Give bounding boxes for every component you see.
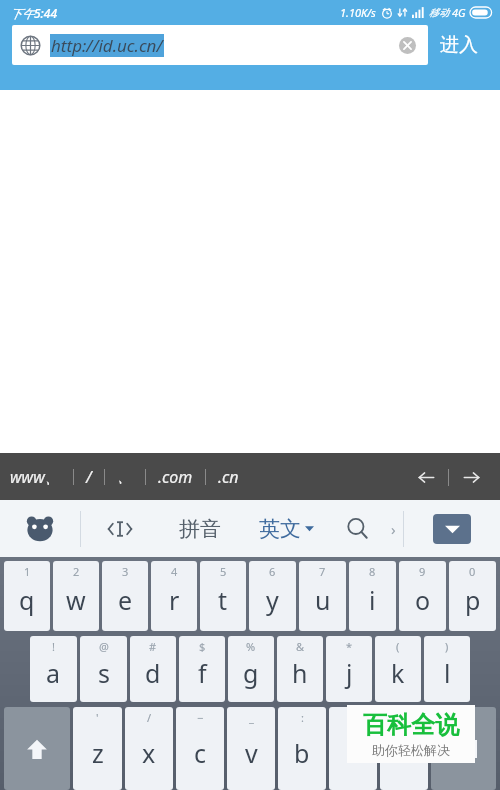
staticText: o: [415, 583, 431, 617]
button[interactable]: Clear: [394, 32, 420, 58]
button[interactable]: Next: [456, 462, 486, 492]
staticText: .com: [158, 466, 193, 488]
button[interactable]: 9: [399, 561, 446, 631]
button[interactable]: _: [227, 707, 275, 790]
button[interactable]: .cn: [216, 460, 241, 494]
button[interactable]: 进入: [428, 25, 490, 65]
staticText: .cn: [218, 466, 239, 488]
button[interactable]: 7: [299, 561, 346, 631]
staticText: ›: [391, 519, 396, 539]
button[interactable]: &: [277, 636, 323, 702]
button[interactable]: m: [380, 707, 428, 790]
staticText: p: [465, 583, 481, 617]
button[interactable]: #: [130, 636, 176, 702]
staticText: 百科全说: [363, 710, 459, 740]
button[interactable]: !: [30, 636, 77, 702]
button[interactable]: 2: [53, 561, 99, 631]
button[interactable]: 1: [4, 561, 50, 631]
staticText: m: [392, 736, 416, 770]
staticText: !: [52, 639, 55, 654]
staticText: 1.10K/s: [340, 5, 376, 20]
staticText: *: [346, 639, 353, 654]
button[interactable]: www、: [8, 460, 63, 494]
button[interactable]: Search: [331, 500, 383, 557]
staticText: 0: [469, 564, 476, 579]
button[interactable]: 4: [151, 561, 197, 631]
staticText: w: [66, 583, 86, 617]
button[interactable]: ': [73, 707, 122, 790]
button[interactable]: 英文: [241, 500, 331, 557]
staticText: 5: [220, 564, 227, 579]
staticText: /: [147, 710, 152, 725]
staticText: q: [19, 583, 35, 617]
button[interactable]: 、: [115, 461, 135, 493]
staticText: :: [301, 710, 304, 725]
button[interactable]: −: [176, 707, 224, 790]
staticText: r: [169, 583, 180, 617]
staticText: /: [86, 466, 92, 488]
staticText: 9: [419, 564, 426, 579]
staticText: −: [197, 710, 204, 725]
button[interactable]: ›: [383, 500, 403, 557]
button[interactable]: :: [278, 707, 326, 790]
button[interactable]: @: [80, 636, 127, 702]
button[interactable]: ): [424, 636, 470, 702]
button[interactable]: 5: [200, 561, 246, 631]
staticText: k: [391, 656, 405, 690]
staticText: 4G: [452, 5, 466, 20]
staticText: @: [99, 639, 109, 654]
staticText: ): [445, 639, 449, 654]
button[interactable]: $: [179, 636, 225, 702]
button[interactable]: Move cursor: [81, 500, 159, 557]
staticText: c: [194, 736, 207, 770]
button[interactable]: 8: [349, 561, 396, 631]
staticText: http://id.uc.cn/: [51, 34, 163, 57]
button[interactable]: 3: [102, 561, 148, 631]
staticText: s: [98, 656, 110, 690]
staticText: 英文: [259, 516, 301, 542]
staticText: z: [92, 736, 104, 770]
button[interactable]: /: [125, 707, 173, 790]
staticText: 移动: [429, 6, 449, 19]
staticText: b: [294, 736, 310, 770]
staticText: 6: [269, 564, 276, 579]
staticText: g: [243, 656, 259, 690]
staticText: t: [218, 583, 228, 617]
button[interactable]: 6: [249, 561, 296, 631]
button[interactable]: http://id.uc.cn/: [12, 25, 428, 65]
staticText: l: [444, 656, 451, 690]
button[interactable]: Hide keyboard: [433, 514, 471, 544]
staticText: v: [245, 736, 258, 770]
staticText: 助你轻松解决: [372, 742, 450, 758]
staticText: i: [369, 583, 376, 617]
button[interactable]: (: [375, 636, 421, 702]
staticText: 拼音: [179, 516, 221, 542]
staticText: 8: [369, 564, 376, 579]
staticText: www、: [10, 466, 61, 488]
staticText: 下午5:44: [10, 5, 58, 21]
button[interactable]: 0: [449, 561, 496, 631]
staticText: n: [345, 736, 361, 770]
button[interactable]: .com: [156, 460, 195, 494]
staticText: a: [46, 656, 61, 690]
staticText: (: [396, 639, 400, 654]
staticText: 4: [171, 564, 178, 579]
button[interactable]: %: [228, 636, 274, 702]
staticText: 1: [24, 564, 31, 579]
button[interactable]: Backspace: [431, 707, 496, 790]
button[interactable]: Baidu input settings: [0, 500, 80, 557]
staticText: 2: [73, 564, 80, 579]
staticText: d: [145, 656, 161, 690]
button[interactable]: /: [84, 460, 94, 494]
button[interactable]: Shift: [4, 707, 70, 790]
staticText: 进入: [440, 33, 478, 57]
staticText: ': [96, 710, 99, 725]
staticText: x: [142, 736, 156, 770]
button[interactable]: ;: [329, 707, 377, 790]
button[interactable]: 拼音: [159, 500, 241, 557]
button[interactable]: *: [326, 636, 372, 702]
staticText: $: [199, 639, 206, 654]
staticText: _: [249, 710, 254, 725]
button[interactable]: Previous: [411, 462, 441, 492]
staticText: h: [292, 656, 308, 690]
